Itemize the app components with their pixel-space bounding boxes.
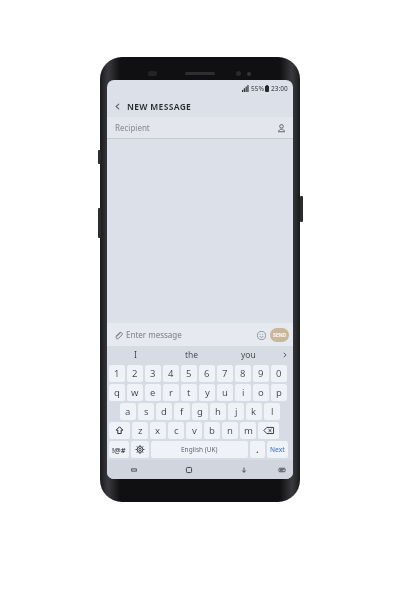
button[interactable]: y xyxy=(199,384,215,401)
button[interactable]: r xyxy=(163,384,179,401)
staticText: i xyxy=(242,386,245,399)
staticText: 2 xyxy=(132,367,138,380)
button[interactable]: g xyxy=(192,403,208,420)
staticText: 3 xyxy=(150,367,156,380)
button[interactable]: a xyxy=(120,403,136,420)
staticText: g xyxy=(197,405,203,418)
button[interactable]: Shift xyxy=(109,422,130,439)
staticText: l xyxy=(271,405,274,418)
button[interactable]: Next xyxy=(267,441,288,458)
button[interactable]: i xyxy=(235,384,251,401)
button[interactable]: m xyxy=(240,422,256,439)
button[interactable]: d xyxy=(156,403,172,420)
button[interactable]: l xyxy=(264,403,280,420)
staticText: k xyxy=(251,405,257,418)
button[interactable]: Recipient xyxy=(107,117,293,138)
staticText: Recipient xyxy=(115,122,150,133)
button[interactable]: 7 xyxy=(217,365,233,382)
button[interactable]: f xyxy=(174,403,190,420)
button[interactable]: Keyboard settings xyxy=(131,441,149,458)
button[interactable]: I xyxy=(107,346,163,363)
button[interactable]: n xyxy=(222,422,238,439)
button[interactable]: Hide keyboard xyxy=(216,460,271,479)
button[interactable]: 5 xyxy=(181,365,197,382)
staticText: c xyxy=(174,424,179,437)
button[interactable]: Home xyxy=(161,460,216,479)
button[interactable]: you xyxy=(220,346,277,363)
button[interactable]: Attach xyxy=(111,328,125,342)
staticText: the xyxy=(185,349,199,361)
staticText: 5 xyxy=(186,367,192,380)
button[interactable]: j xyxy=(228,403,244,420)
button[interactable]: 3 xyxy=(145,365,161,382)
staticText: o xyxy=(258,386,264,399)
button[interactable]: k xyxy=(246,403,262,420)
button[interactable]: b xyxy=(204,422,220,439)
button[interactable]: More suggestions xyxy=(277,346,293,363)
staticText: 6 xyxy=(204,367,210,380)
staticText: 55% xyxy=(251,84,264,93)
button[interactable]: the xyxy=(163,346,220,363)
staticText: r xyxy=(169,386,173,399)
staticText: d xyxy=(161,405,167,418)
button[interactable]: Recents xyxy=(107,460,161,479)
staticText: b xyxy=(209,424,215,437)
button[interactable]: o xyxy=(253,384,269,401)
staticText: m xyxy=(244,424,253,437)
staticText: j xyxy=(235,405,238,418)
button[interactable]: 6 xyxy=(199,365,215,382)
button[interactable]: v xyxy=(186,422,202,439)
button[interactable]: 8 xyxy=(235,365,251,382)
staticText: u xyxy=(222,386,228,399)
button[interactable]: z xyxy=(132,422,148,439)
button[interactable]: 1 xyxy=(109,365,125,382)
staticText: English (UK) xyxy=(181,445,218,454)
button[interactable]: Add contact xyxy=(275,122,287,134)
staticText: Enter message xyxy=(126,329,182,340)
staticText: 4 xyxy=(168,367,174,380)
staticText: 9 xyxy=(258,367,264,380)
button[interactable]: 4 xyxy=(163,365,179,382)
button[interactable]: 9 xyxy=(253,365,269,382)
button[interactable]: s xyxy=(138,403,154,420)
button[interactable]: h xyxy=(210,403,226,420)
staticText: e xyxy=(150,386,156,399)
button[interactable]: 0 xyxy=(271,365,287,382)
button[interactable]: Back xyxy=(107,96,127,117)
button[interactable]: u xyxy=(217,384,233,401)
staticText: 0 xyxy=(276,367,282,380)
button[interactable]: c xyxy=(168,422,184,439)
staticText: f xyxy=(180,405,184,418)
button[interactable]: English (UK) xyxy=(151,441,248,458)
staticText: x xyxy=(155,424,161,437)
staticText: w xyxy=(131,386,139,399)
button[interactable]: Change keyboard xyxy=(271,460,293,479)
button[interactable]: SEND xyxy=(270,328,289,342)
button[interactable]: w xyxy=(127,384,143,401)
button[interactable]: !@# xyxy=(109,441,129,458)
staticText: z xyxy=(138,424,143,437)
staticText: 8 xyxy=(240,367,246,380)
staticText: !@# xyxy=(112,445,126,455)
button[interactable]: 2 xyxy=(127,365,143,382)
button[interactable]: x xyxy=(150,422,166,439)
staticText: p xyxy=(276,386,282,399)
button[interactable]: q xyxy=(109,384,125,401)
staticText: h xyxy=(215,405,221,418)
staticText: 23:00 xyxy=(271,84,288,93)
button[interactable]: Back xyxy=(107,96,293,117)
staticText: q xyxy=(114,386,120,399)
button[interactable]: . xyxy=(250,441,265,458)
staticText: NEW MESSAGE xyxy=(127,101,192,113)
staticText: v xyxy=(192,424,197,437)
staticText: n xyxy=(227,424,233,437)
button[interactable]: Emoji xyxy=(254,328,268,342)
button[interactable]: e xyxy=(145,384,161,401)
staticText: I xyxy=(134,349,137,361)
button[interactable]: Backspace xyxy=(258,422,279,439)
staticText: SEND xyxy=(273,332,287,339)
button[interactable]: p xyxy=(271,384,287,401)
staticText: 7 xyxy=(222,367,228,380)
button[interactable]: t xyxy=(181,384,197,401)
staticText: s xyxy=(144,405,149,418)
